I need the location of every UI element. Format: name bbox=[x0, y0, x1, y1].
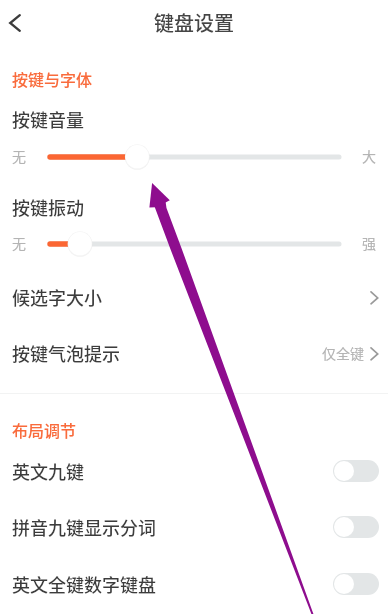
button[interactable]: Slider bbox=[0, 224, 388, 264]
staticText: 布局调节 bbox=[12, 418, 77, 441]
staticText: 按键音量 bbox=[12, 106, 84, 132]
staticText: 按键与字体 bbox=[12, 67, 93, 90]
button[interactable]: 英文九键 bbox=[0, 444, 388, 498]
staticText: 强 bbox=[362, 233, 376, 253]
staticText: 大 bbox=[362, 146, 376, 166]
staticText: 无 bbox=[12, 146, 26, 166]
staticText: 候选字大小 bbox=[12, 284, 102, 310]
staticText: 按键气泡提示 bbox=[12, 340, 120, 366]
button[interactable]: 候选字大小 bbox=[0, 271, 388, 323]
staticText: 键盘设置 bbox=[154, 8, 234, 37]
staticText: 英文全键数字键盘 bbox=[12, 571, 156, 597]
button[interactable]: Slider bbox=[0, 137, 388, 177]
staticText: 英文九键 bbox=[12, 458, 84, 484]
button[interactable]: 拼音九键显示分词 bbox=[0, 500, 388, 554]
button[interactable]: 英文全键数字键盘 bbox=[0, 557, 388, 611]
staticText: 仅全键 bbox=[322, 343, 364, 363]
button[interactable]: Back bbox=[0, 0, 30, 46]
staticText: 无 bbox=[12, 233, 26, 253]
staticText: 按键振动 bbox=[12, 194, 84, 220]
staticText: 拼音九键显示分词 bbox=[12, 514, 156, 540]
button[interactable]: 按键气泡提示 bbox=[0, 327, 388, 379]
